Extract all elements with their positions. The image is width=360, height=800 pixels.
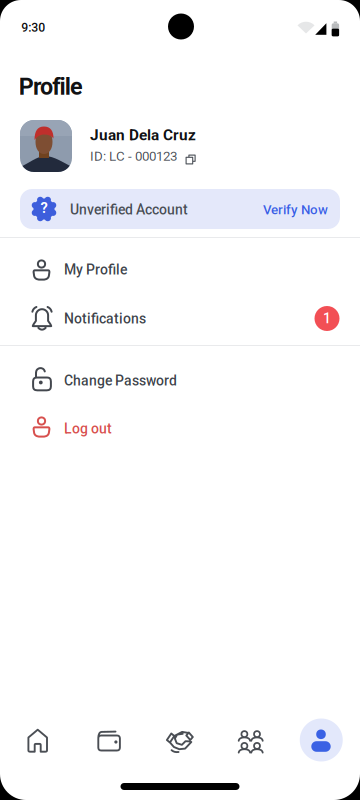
staticText: Notifications <box>64 310 146 327</box>
staticText: Profile <box>19 73 83 100</box>
button[interactable]: Notifications <box>0 294 360 343</box>
button[interactable]: Profile <box>286 712 357 770</box>
button[interactable]: Home <box>2 712 73 770</box>
staticText: 1 <box>323 310 331 327</box>
staticText: ID: LC - 000123 <box>90 148 177 164</box>
staticText: Verify Now <box>263 202 328 218</box>
button[interactable]: Community <box>215 712 286 770</box>
staticText: Change Password <box>64 372 177 389</box>
staticText: My Profile <box>64 261 127 278</box>
button[interactable]: Wallet <box>73 712 144 770</box>
button[interactable]: My Profile <box>0 245 360 294</box>
button[interactable]: Change Password <box>0 356 360 405</box>
staticText: Unverified Account <box>70 201 188 218</box>
staticText: 9:30 <box>21 20 45 35</box>
staticText: Juan Dela Cruz <box>90 126 196 144</box>
staticText: Log out <box>64 420 112 437</box>
button[interactable]: Copy ID <box>185 154 195 164</box>
staticText: ? <box>40 199 47 216</box>
button[interactable]: Log out <box>0 404 360 453</box>
button[interactable]: Transactions <box>144 712 215 770</box>
button[interactable]: ? <box>20 189 340 229</box>
